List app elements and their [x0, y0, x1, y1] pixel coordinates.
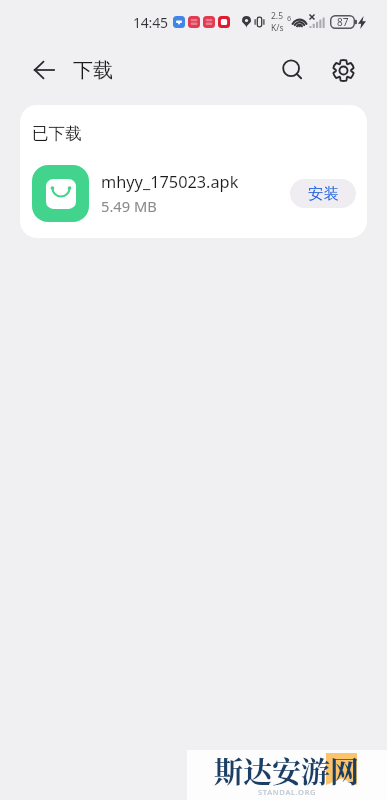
button[interactable]: Back [27, 53, 61, 87]
button[interactable]: Search [275, 53, 309, 87]
staticText: 14:45 [133, 13, 168, 32]
staticText: 斯达安游网 [214, 750, 360, 792]
staticText: K/s [271, 22, 284, 34]
staticText: 安装 [308, 184, 339, 204]
staticText: 2.5 [271, 10, 284, 22]
staticText: 6 [287, 13, 292, 23]
staticText: 5.49 MB [101, 196, 157, 216]
staticText: mhyy_175023.apk [101, 171, 239, 193]
staticText: 已下载 [32, 123, 82, 144]
staticText: 87 [337, 15, 349, 29]
button[interactable]: Settings [326, 53, 360, 87]
staticText: 下载 [73, 58, 113, 83]
staticText: STANDAL.ORG [258, 787, 317, 797]
button[interactable]: 安装 [290, 179, 356, 208]
